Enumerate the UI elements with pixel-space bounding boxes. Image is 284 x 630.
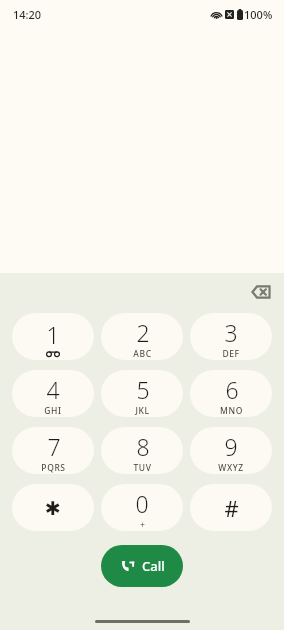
button[interactable]: 9	[190, 427, 272, 474]
staticText: Call	[142, 557, 165, 575]
staticText: JKL	[135, 405, 150, 417]
staticText: ✱	[45, 497, 61, 519]
staticText: 1	[46, 319, 60, 350]
staticText: ABC	[133, 348, 152, 360]
button[interactable]: Backspace	[244, 275, 278, 309]
button[interactable]: 3	[190, 313, 272, 360]
staticText: #	[224, 493, 239, 523]
staticText: 9	[224, 431, 238, 462]
staticText: 4	[46, 374, 60, 405]
staticText: +	[140, 519, 145, 530]
staticText: 2	[136, 317, 150, 348]
button[interactable]: 4	[12, 370, 94, 417]
staticText: 6	[225, 374, 239, 405]
button[interactable]: #	[190, 484, 272, 531]
staticText: DEF	[222, 348, 240, 360]
staticText: TUV	[133, 462, 152, 474]
button[interactable]: 6	[190, 370, 272, 417]
staticText: 0	[135, 488, 149, 519]
button[interactable]: 1	[12, 313, 94, 360]
staticText: MNO	[220, 405, 243, 417]
button[interactable]: 2	[101, 313, 183, 360]
staticText: PQRS	[41, 462, 66, 474]
staticText: 100%	[244, 7, 273, 22]
button[interactable]: Call	[101, 545, 183, 587]
staticText: WXYZ	[218, 462, 244, 474]
button[interactable]: 7	[12, 427, 94, 474]
button[interactable]: 8	[101, 427, 183, 474]
button[interactable]: 0	[101, 484, 183, 531]
staticText: GHI	[44, 405, 62, 417]
button[interactable]: 5	[101, 370, 183, 417]
staticText: 5	[136, 374, 150, 405]
staticText: 14:20	[13, 7, 42, 22]
staticText: 8	[136, 431, 150, 462]
staticText: 7	[47, 431, 61, 462]
staticText: 3	[224, 317, 238, 348]
button[interactable]: ✱	[12, 484, 94, 531]
